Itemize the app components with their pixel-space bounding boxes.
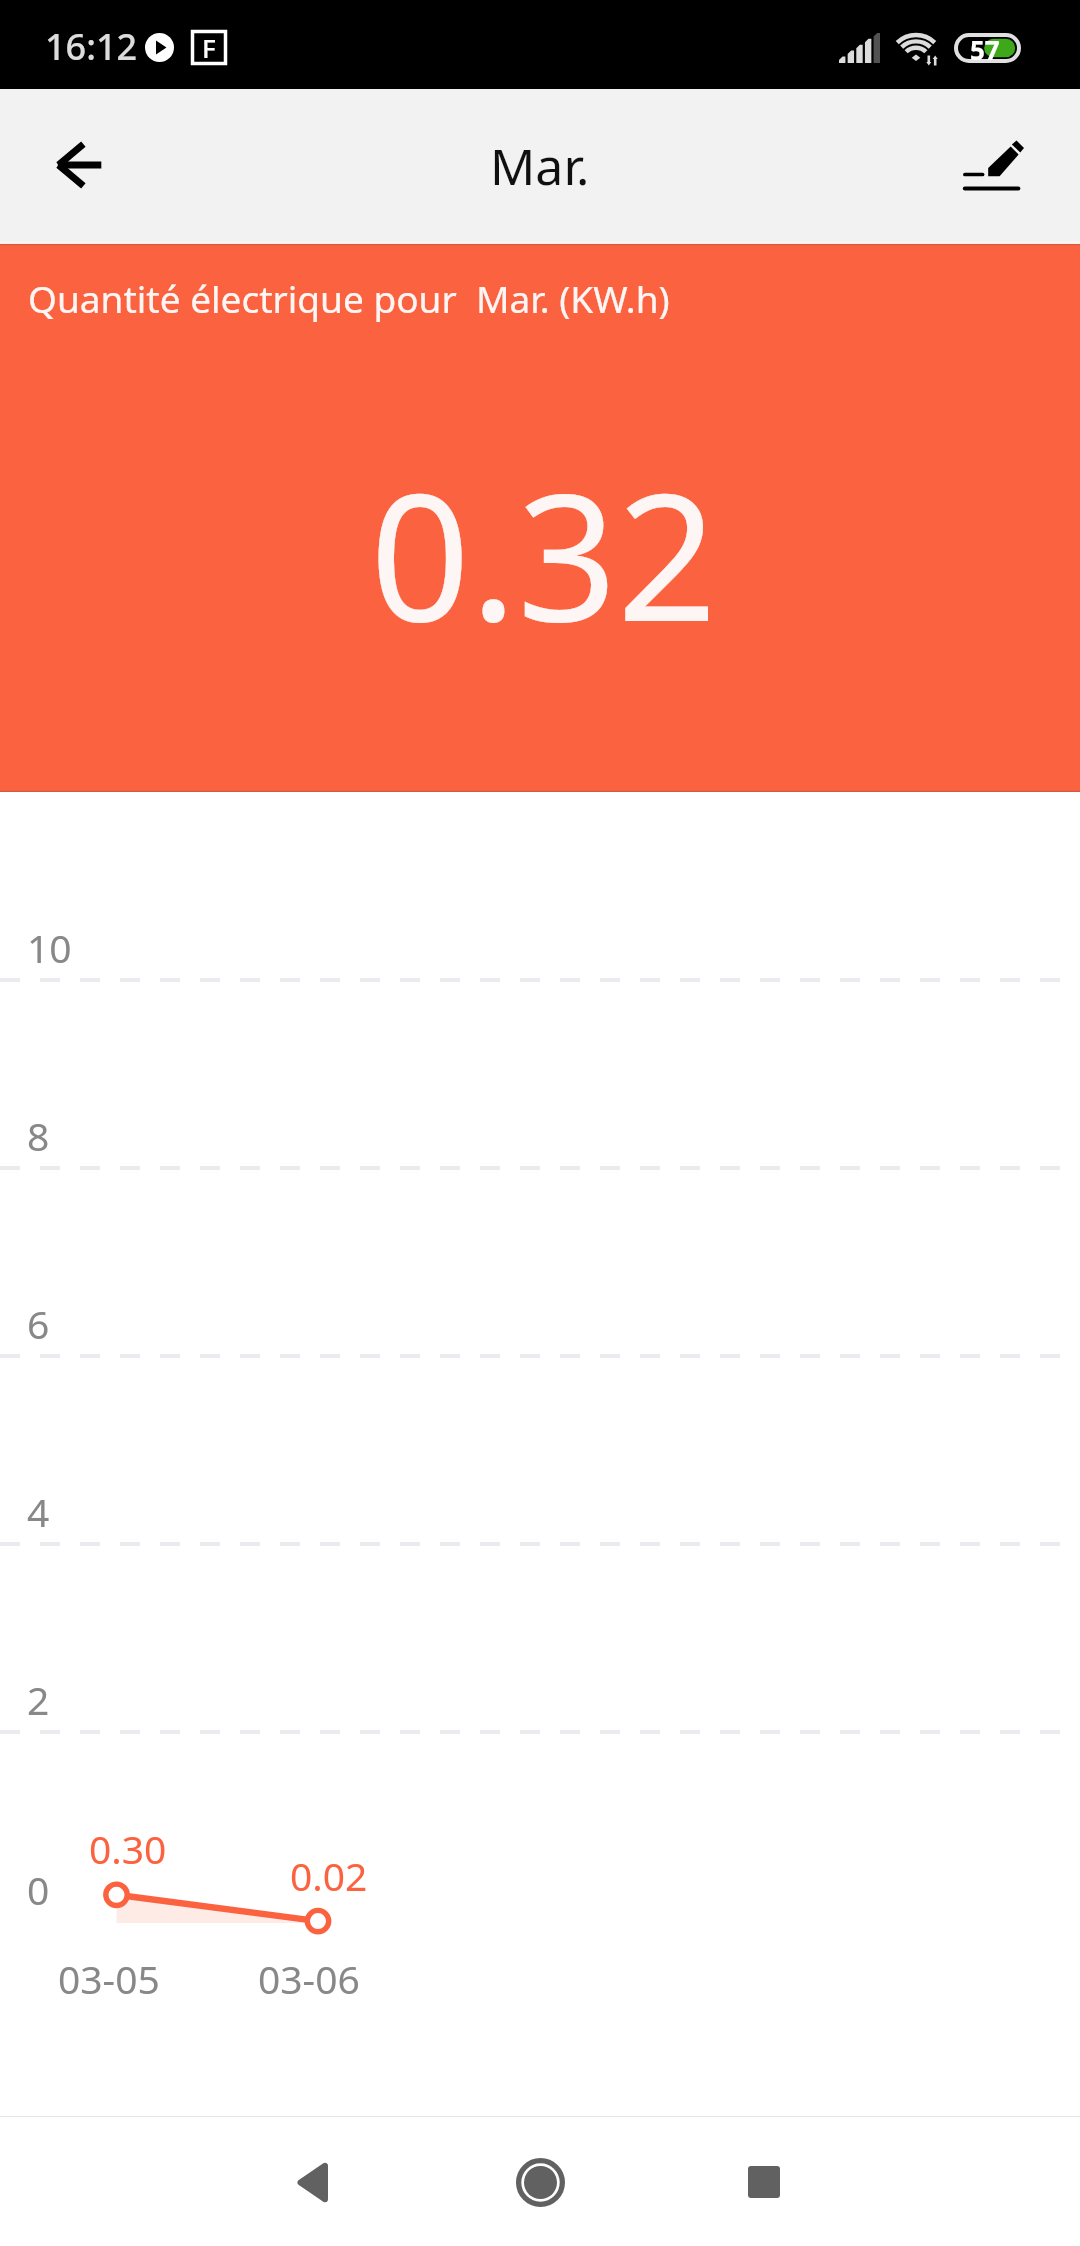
staticText: 03-06 xyxy=(258,1952,360,2005)
staticText: 2 xyxy=(27,1673,50,1726)
staticText: Mar. xyxy=(490,132,590,200)
staticText: 0.32 xyxy=(370,434,718,672)
button[interactable]: Edit xyxy=(939,110,1049,220)
staticText: 0 xyxy=(27,1863,50,1916)
staticText: 57 xyxy=(970,32,1000,62)
staticText: F xyxy=(202,30,216,65)
staticText: 10 xyxy=(27,921,72,974)
staticText: Quantité électrique pour Mar. (KW.h) xyxy=(28,273,670,323)
staticText: 16:12 xyxy=(45,22,138,71)
button[interactable]: Home xyxy=(480,2122,600,2242)
button[interactable]: Recents xyxy=(704,2122,824,2242)
staticText: 6 xyxy=(27,1297,50,1350)
button[interactable]: Back xyxy=(24,110,134,220)
staticText: 03-05 xyxy=(58,1952,160,2005)
button[interactable]: Back xyxy=(252,2122,372,2242)
staticText: 0.02 xyxy=(290,1849,368,1902)
staticText: 8 xyxy=(27,1109,50,1162)
staticText: 0.30 xyxy=(89,1822,167,1875)
staticText: 4 xyxy=(27,1485,50,1538)
